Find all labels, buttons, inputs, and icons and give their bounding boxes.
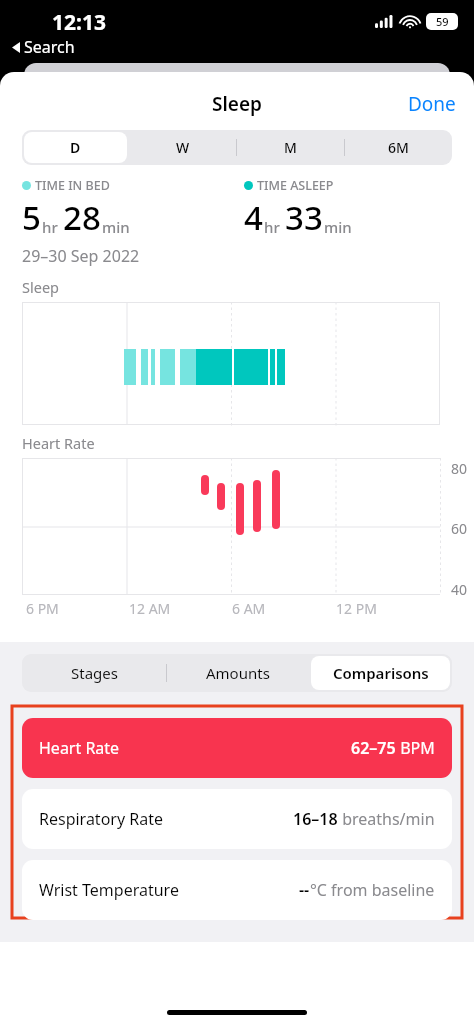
button[interactable]: Heart Rate — [22, 718, 452, 778]
staticText: breaths/min — [338, 808, 435, 830]
staticText: 60 — [451, 519, 468, 538]
staticText: 28 — [63, 195, 101, 240]
staticText: Search — [24, 36, 75, 58]
staticText: °C from baseline — [310, 879, 435, 901]
staticText: 59 — [436, 14, 449, 29]
button[interactable]: D — [22, 130, 129, 165]
button[interactable]: Stages — [22, 654, 166, 692]
staticText: 40 — [451, 580, 468, 599]
staticText: Sleep — [212, 91, 262, 117]
staticText: hr — [42, 217, 58, 237]
button[interactable]: Comparisons — [309, 654, 452, 692]
staticText: D — [70, 138, 81, 157]
staticText: Comparisons — [333, 663, 429, 683]
staticText: 5 — [22, 195, 41, 240]
staticText: 12:13 — [52, 8, 106, 37]
staticText: Heart Rate — [39, 737, 120, 759]
staticText: BPM — [396, 737, 435, 759]
staticText: 29–30 Sep 2022 — [22, 245, 140, 267]
staticText: 6 PM — [26, 599, 59, 618]
staticText: Wrist Temperature — [39, 879, 179, 901]
staticText: 80 — [451, 459, 468, 478]
staticText: Stages — [71, 663, 118, 683]
staticText: 16–18 — [293, 808, 338, 830]
staticText: M — [284, 138, 297, 157]
button[interactable]: Done — [400, 85, 464, 123]
staticText: 6 AM — [232, 599, 266, 618]
staticText: 6M — [388, 138, 409, 157]
staticText: Sleep — [22, 277, 59, 297]
button[interactable]: 6M — [344, 130, 452, 165]
staticText: Respiratory Rate — [39, 808, 163, 830]
staticText: 12 AM — [129, 599, 171, 618]
staticText: min — [324, 217, 352, 237]
button[interactable]: M — [236, 130, 344, 165]
button[interactable]: W — [129, 130, 236, 165]
staticText: TIME ASLEEP — [257, 177, 334, 194]
staticText: TIME IN BED — [35, 177, 110, 194]
staticText: min — [102, 217, 130, 237]
staticText: 12 PM — [336, 599, 377, 618]
staticText: 62–75 — [351, 737, 396, 759]
staticText: hr — [264, 217, 280, 237]
staticText: W — [176, 138, 190, 157]
staticText: -- — [299, 879, 310, 901]
button[interactable]: Respiratory Rate — [22, 789, 452, 849]
button[interactable]: Search — [12, 36, 75, 58]
staticText: Heart Rate — [22, 433, 95, 453]
staticText: 4 — [244, 195, 263, 240]
staticText: 33 — [285, 195, 323, 240]
staticText: Done — [408, 91, 456, 117]
button[interactable]: Amounts — [166, 654, 309, 692]
staticText: Amounts — [206, 663, 270, 683]
button[interactable]: Wrist Temperature — [22, 860, 452, 920]
